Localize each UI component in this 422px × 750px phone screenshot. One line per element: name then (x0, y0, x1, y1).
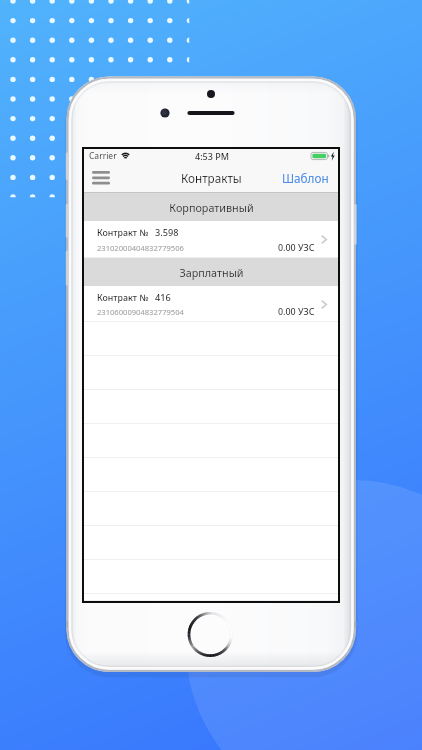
staticText: Carrier (89, 150, 117, 162)
staticText: Корпоративный (169, 200, 254, 215)
staticText: 23102000404832779506 (97, 243, 184, 253)
staticText: 23106000904832779504 (97, 307, 184, 317)
staticText: 3.598 (155, 226, 179, 239)
staticText: 0.00 УЗС (278, 241, 315, 253)
staticText: Контракт № (97, 292, 149, 304)
staticText: 0.00 УЗС (278, 305, 315, 317)
staticText: 416 (155, 291, 171, 304)
staticText: Шаблон (282, 170, 329, 186)
staticText: Зарплатный (179, 265, 244, 280)
staticText: Контракты (181, 170, 242, 186)
staticText: Контракт № (97, 227, 149, 239)
button[interactable]: Контракт № (84, 221, 338, 258)
button[interactable]: Шаблон (273, 164, 338, 192)
button[interactable]: Контракт № (84, 286, 338, 322)
button[interactable]: Menu (92, 166, 118, 190)
staticText: 4:53 PM (195, 150, 229, 162)
